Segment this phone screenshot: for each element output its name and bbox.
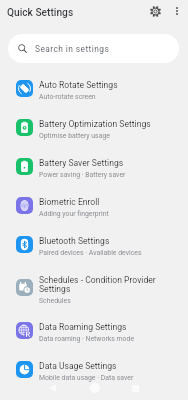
staticText: Quick Settings (7, 7, 74, 19)
staticText: Paired devices · Available devices (39, 249, 142, 257)
button[interactable]: Data Roaming Settings (0, 311, 188, 350)
button[interactable]: Bluetooth Settings (0, 225, 188, 264)
staticText: Battery Saver Settings (39, 158, 124, 168)
staticText: Adding your fingerprint (39, 210, 109, 218)
staticText: Biometric Enroll (39, 197, 100, 207)
button[interactable]: Data Usage Settings (0, 350, 188, 389)
staticText: Auto Rotate Settings (39, 80, 118, 90)
button[interactable]: Battery Optimization Settings (0, 108, 188, 147)
button[interactable]: More options (167, 1, 187, 21)
button[interactable]: Schedules - Condition Provider Settings (0, 264, 188, 311)
button[interactable]: Battery Saver Settings (0, 147, 188, 186)
staticText: Data roaming · Networks mode (39, 335, 135, 343)
staticText: Search in settings (35, 44, 110, 54)
button[interactable]: Home (85, 378, 105, 398)
staticText: Power saving · Battery saver (39, 171, 126, 179)
staticText: Data Roaming Settings (39, 322, 127, 332)
button[interactable]: Back (43, 378, 63, 398)
staticText: Schedules (39, 297, 71, 305)
staticText: Mobile data usage · Data saver (39, 374, 134, 382)
button[interactable]: Quick Settings (7, 7, 74, 19)
staticText: Schedules - Condition Provider Settings (39, 275, 180, 294)
button[interactable]: Auto Rotate Settings (0, 69, 188, 108)
staticText: Battery Optimization Settings (39, 119, 151, 129)
staticText: Optimise battery usage (39, 132, 110, 140)
button[interactable]: Recents (125, 378, 145, 398)
button[interactable]: Settings (145, 1, 166, 22)
staticText: Auto-rotate screen (39, 93, 96, 101)
button[interactable]: Biometric Enroll (0, 186, 188, 225)
button[interactable]: Search in settings (8, 34, 179, 63)
staticText: Data Usage Settings (39, 361, 117, 371)
staticText: Bluetooth Settings (39, 236, 110, 246)
